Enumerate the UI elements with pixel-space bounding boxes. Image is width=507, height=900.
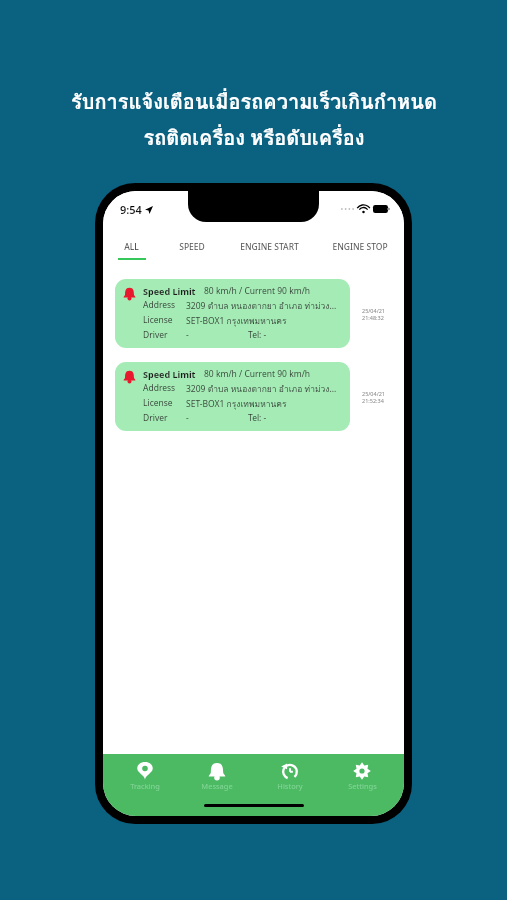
- staticText: 9:54: [120, 202, 142, 217]
- staticText: SET-BOX1 กรุงเทพมหานคร: [186, 397, 287, 411]
- staticText: License: [143, 397, 173, 409]
- button[interactable]: Speed Limit: [115, 362, 350, 431]
- staticText: Speed Limit: [143, 368, 196, 380]
- button[interactable]: Message: [186, 762, 248, 791]
- staticText: ALL: [124, 241, 139, 253]
- staticText: Speed Limit: [143, 285, 196, 297]
- button[interactable]: ENGINE STOP: [315, 239, 404, 262]
- button[interactable]: Tracking: [114, 762, 176, 791]
- staticText: ENGINE STOP: [332, 241, 388, 253]
- staticText: รถติดเครื่อง หรือดับเครื่อง: [143, 122, 365, 154]
- staticText: 80 km/h / Current 90 km/h: [204, 368, 311, 380]
- button[interactable]: ALL: [103, 239, 160, 262]
- staticText: Settings: [348, 781, 377, 791]
- button[interactable]: Speed Limit: [115, 279, 350, 348]
- button[interactable]: History: [259, 762, 321, 791]
- staticText: Driver: [143, 329, 168, 341]
- staticText: Driver: [143, 412, 168, 424]
- staticText: Tracking: [130, 781, 160, 791]
- staticText: SET-BOX1 กรุงเทพมหานคร: [186, 314, 287, 328]
- staticText: 80 km/h / Current 90 km/h: [204, 285, 311, 297]
- button[interactable]: ENGINE START: [223, 239, 315, 262]
- staticText: Address: [143, 299, 176, 311]
- staticText: 21:48:32: [362, 314, 384, 321]
- staticText: ENGINE START: [240, 241, 299, 253]
- staticText: รับการแจ้งเตือนเมื่อรถความเร็วเกินกำหนด: [71, 86, 437, 118]
- staticText: 25/04/21: [362, 390, 385, 397]
- staticText: Tel: -: [248, 329, 267, 341]
- staticText: Tel: -: [248, 412, 267, 424]
- staticText: Address: [143, 382, 176, 394]
- staticText: -: [186, 412, 189, 424]
- staticText: 3209 ตำบล หนองตากยา อำเภอ ท่าม่วง...: [186, 382, 337, 396]
- staticText: License: [143, 314, 173, 326]
- staticText: SPEED: [179, 241, 205, 253]
- button[interactable]: Settings: [331, 762, 393, 791]
- staticText: 21:52:34: [362, 397, 384, 404]
- button[interactable]: SPEED: [160, 239, 223, 262]
- staticText: Message: [201, 781, 233, 791]
- staticText: 3209 ตำบล หนองตากยา อำเภอ ท่าม่วง...: [186, 299, 337, 313]
- staticText: -: [186, 329, 189, 341]
- staticText: History: [277, 781, 303, 791]
- staticText: 25/04/21: [362, 307, 385, 314]
